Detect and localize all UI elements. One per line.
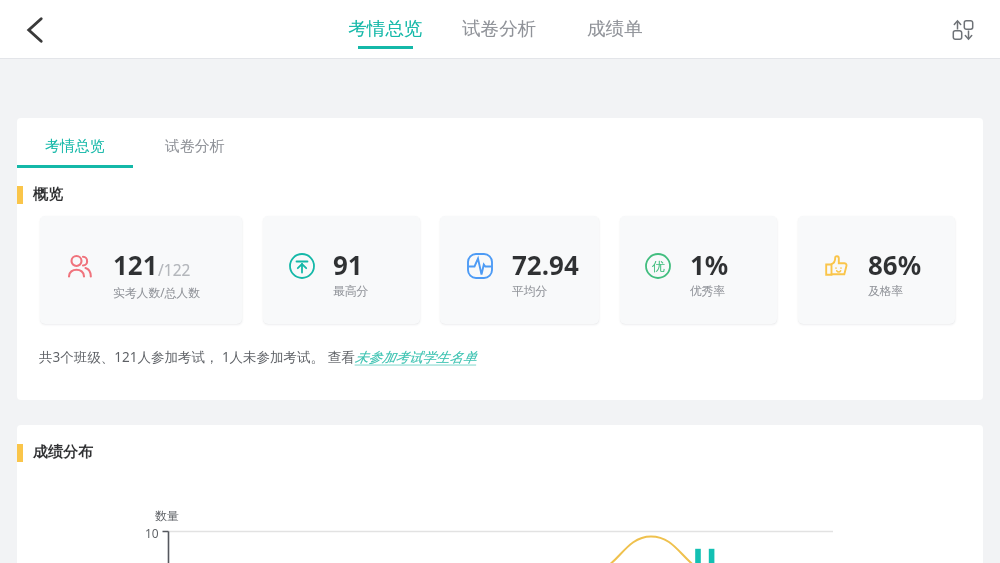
staticText: 考情总览 [45,137,105,156]
staticText: 优 [652,258,665,274]
button[interactable]: 考情总览 [348,0,423,59]
staticText: 91 [333,247,363,282]
staticText: 考情总览 [348,17,423,40]
button[interactable]: 86% [798,216,955,324]
staticText: 及格率 [868,284,904,299]
button[interactable]: 72.94 [440,216,599,324]
button[interactable]: 共3个班级、121人参加考试， 1人未参加考试。 查看未参加考试学生名单 [39,348,477,366]
staticText: /122 [158,259,191,280]
button[interactable]: 考情总览 [17,131,133,188]
button[interactable]: 成绩单 [587,0,643,59]
button[interactable]: 优 [620,216,777,324]
staticText: 成绩单 [587,17,643,40]
button[interactable]: 试卷分析 [137,131,253,188]
staticText: 数量 [155,508,179,523]
staticText: 平均分 [512,284,548,299]
staticText: 试卷分析 [165,137,225,156]
staticText: 86% [868,247,922,282]
staticText: 概览 [33,185,63,204]
staticText: 最高分 [333,284,369,299]
button[interactable]: Sort [941,8,985,52]
button[interactable]: 91 [263,216,420,324]
staticText: 成绩分布 [33,443,93,462]
staticText: 优秀率 [690,284,726,299]
button[interactable]: 试卷分析 [462,0,537,59]
staticText: 121 [113,247,158,282]
staticText: 实考人数/总人数 [113,284,200,300]
staticText: 1% [690,247,729,282]
staticText: 72.94 [512,247,579,282]
staticText: 10 [145,525,159,541]
button[interactable]: 121 [40,216,242,324]
staticText: 试卷分析 [462,17,537,40]
button[interactable]: Back [11,6,59,54]
